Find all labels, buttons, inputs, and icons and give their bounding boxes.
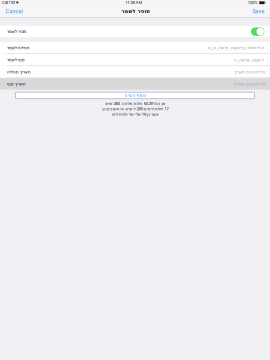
button[interactable]: תחילת לשמר — [0, 42, 270, 54]
staticText: אשכו, פרשה, ני — [234, 57, 261, 62]
staticText: Cancel — [6, 8, 23, 14]
staticText: תזכיר לשמר — [121, 8, 149, 14]
button[interactable]: סוף לשמר — [0, 54, 270, 66]
staticText: 100% — [248, 0, 258, 5]
staticText: סוף לשמר — [6, 57, 24, 62]
staticText: כדי להכניס תאריך — [233, 69, 264, 74]
staticText: תאריך סוף — [6, 81, 25, 86]
staticText: מן הכל 6429 חלות מלאה 384 שיש — [105, 101, 165, 106]
staticText: בדצמבר, בראשות, פרשה, א_א — [208, 45, 261, 50]
staticText: 17 חלות לימים 285 ל שיש הראשונים כן — [102, 106, 168, 111]
button[interactable]: תאריך סוף — [0, 78, 270, 90]
button[interactable]: תאריך תחילה — [0, 66, 270, 78]
button[interactable]: הוסף הערה — [15, 92, 254, 99]
staticText: תזכיר לשמר — [6, 29, 26, 34]
staticText: אשר כן 16 שלי של חלות לימ — [111, 112, 158, 117]
staticText: תאריך תחילה — [6, 69, 30, 74]
staticText: Carrier — [2, 0, 15, 5]
staticText: Save — [252, 8, 264, 14]
staticText: תחילת לשמר — [6, 45, 29, 50]
staticText: כדי להכניס תאריך — [233, 81, 264, 86]
button[interactable]: Cancel — [0, 6, 27, 17]
staticText: הוסף הערה — [124, 93, 146, 98]
button[interactable]: Reminder switch — [251, 27, 264, 36]
button[interactable]: Save — [248, 6, 270, 17]
staticText: 11:09 AM — [125, 0, 141, 5]
